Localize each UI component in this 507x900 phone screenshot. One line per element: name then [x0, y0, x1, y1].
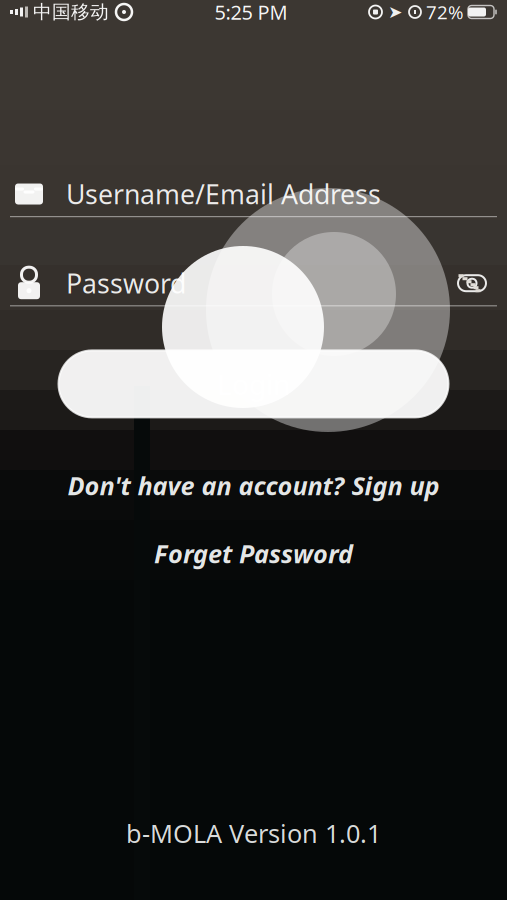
staticText: 72% [426, 0, 464, 24]
staticText: Don't have an account? Sign up [67, 469, 439, 502]
staticText: Username/Email Address [66, 176, 381, 212]
button[interactable]: Don't have an account? Sign up [67, 469, 439, 501]
button[interactable]: Login [58, 350, 448, 417]
staticText: 5:25 PM [214, 0, 287, 25]
staticText: b-MOLA Version 1.0.1 [126, 816, 381, 850]
staticText: ➤ [388, 2, 403, 22]
staticText: Password [66, 265, 186, 301]
staticText: Forget Password [154, 537, 353, 570]
button[interactable]: Show password [451, 262, 493, 304]
button[interactable]: Forget Password [154, 537, 353, 569]
staticText: 中国移动 [33, 0, 109, 23]
